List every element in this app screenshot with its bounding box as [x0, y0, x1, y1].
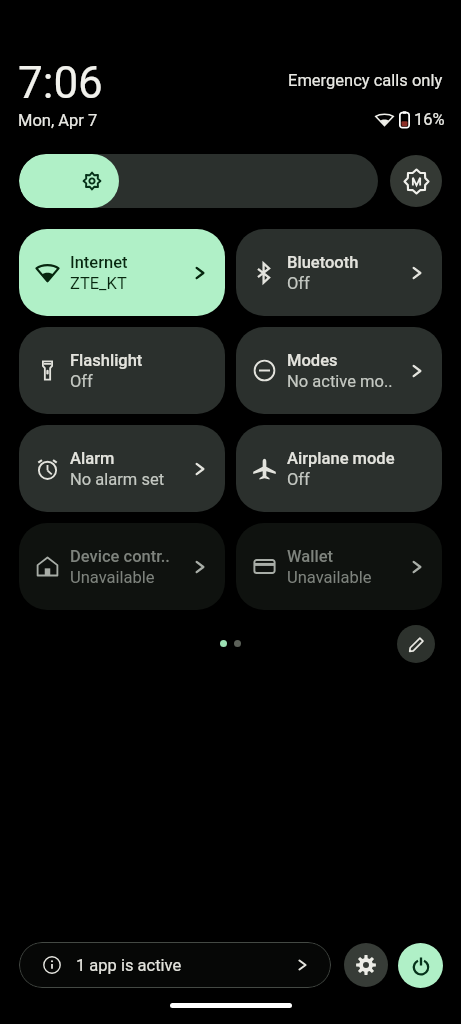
button[interactable]: Power	[398, 943, 443, 988]
staticText: Internet	[70, 253, 128, 272]
staticText: No alarm set	[70, 470, 165, 489]
staticText: Off	[287, 274, 310, 293]
button[interactable]: Brightness	[19, 154, 378, 208]
staticText: 16%	[414, 110, 445, 129]
staticText: Unavailable	[287, 568, 372, 587]
button[interactable]: Edit tiles	[397, 625, 435, 663]
button[interactable]: Bluetooth	[236, 229, 442, 316]
button[interactable]: Device contr..	[19, 523, 225, 610]
staticText: Bluetooth	[287, 253, 359, 272]
staticText: Off	[287, 470, 310, 489]
staticText: Airplane mode	[287, 449, 395, 468]
button[interactable]: Internet	[19, 229, 225, 316]
button[interactable]: Settings	[344, 943, 388, 987]
button[interactable]: Auto brightness	[390, 155, 442, 207]
staticText: Device contr..	[70, 547, 170, 566]
staticText: Flashlight	[70, 351, 143, 370]
staticText: ZTE_KT	[70, 274, 127, 293]
staticText: Unavailable	[70, 568, 155, 587]
staticText: Off	[70, 372, 93, 391]
staticText: Mon, Apr 7	[18, 111, 98, 130]
staticText: Wallet	[287, 547, 333, 566]
button[interactable]: Wallet	[236, 523, 442, 610]
staticText: No active mo..	[287, 372, 393, 391]
staticText: Alarm	[70, 449, 115, 468]
staticText: 7:06	[18, 57, 103, 109]
button[interactable]: Alarm	[19, 425, 225, 512]
button[interactable]: Flashlight	[19, 327, 225, 414]
staticText: Emergency calls only	[288, 71, 443, 90]
button[interactable]: Modes	[236, 327, 442, 414]
button[interactable]: Airplane mode	[236, 425, 442, 512]
staticText: 1 app is active	[76, 956, 182, 975]
staticText: Modes	[287, 351, 338, 370]
button[interactable]: 1 app is active	[19, 942, 331, 988]
